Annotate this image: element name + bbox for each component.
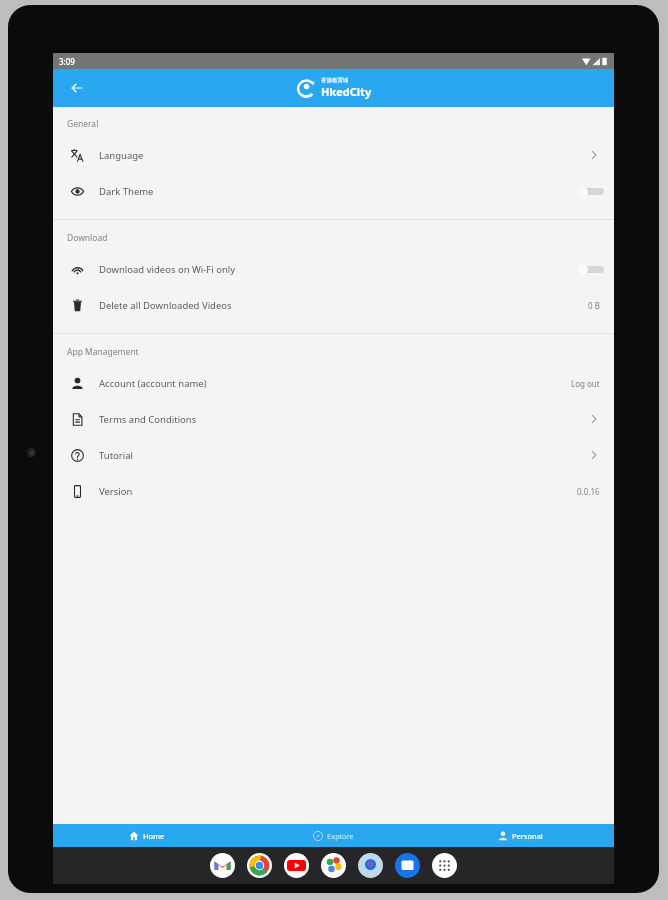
staticText: Dark Theme <box>99 185 154 198</box>
staticText: Download <box>67 232 108 244</box>
staticText: App Management <box>67 346 139 358</box>
button[interactable]: Dark Theme <box>53 173 614 209</box>
staticText: Terms and Conditions <box>99 413 197 426</box>
staticText: Explore <box>327 831 354 841</box>
staticText: HkedCity <box>321 84 372 99</box>
button[interactable]: Home <box>53 824 240 847</box>
staticText: Version <box>99 485 133 498</box>
button[interactable]: App <box>210 853 235 878</box>
button[interactable]: Terms and Conditions <box>53 401 614 437</box>
button[interactable]: Account (account name) <box>53 365 614 401</box>
staticText: General <box>67 118 99 130</box>
staticText: Download videos on Wi-Fi only <box>99 263 236 276</box>
button[interactable]: App <box>395 853 420 878</box>
staticText: 3:09 <box>59 56 75 67</box>
staticText: Log out <box>571 378 600 389</box>
button[interactable]: App <box>432 853 457 878</box>
staticText: Personal <box>512 831 543 841</box>
button[interactable]: Explore <box>240 824 427 847</box>
staticText: Home <box>143 831 165 841</box>
button[interactable]: Back <box>66 77 88 99</box>
button[interactable]: Personal <box>427 824 614 847</box>
button[interactable]: Delete all Downloaded Videos <box>53 287 614 323</box>
staticText: 0.0.16 <box>577 486 600 497</box>
staticText: Account (account name) <box>99 377 207 390</box>
button[interactable]: App <box>321 853 346 878</box>
button[interactable]: App <box>247 853 272 878</box>
staticText: 香港教育城 <box>321 77 349 84</box>
staticText: Language <box>99 149 144 162</box>
staticText: Delete all Downloaded Videos <box>99 299 232 312</box>
staticText: Tutorial <box>99 449 134 462</box>
button[interactable]: Language <box>53 137 614 173</box>
button[interactable]: Version <box>53 473 614 509</box>
button[interactable]: Tutorial <box>53 437 614 473</box>
staticText: 0 B <box>588 300 600 311</box>
button[interactable]: App <box>358 853 383 878</box>
button[interactable]: Download videos on Wi-Fi only <box>53 251 614 287</box>
button[interactable]: App <box>284 853 309 878</box>
